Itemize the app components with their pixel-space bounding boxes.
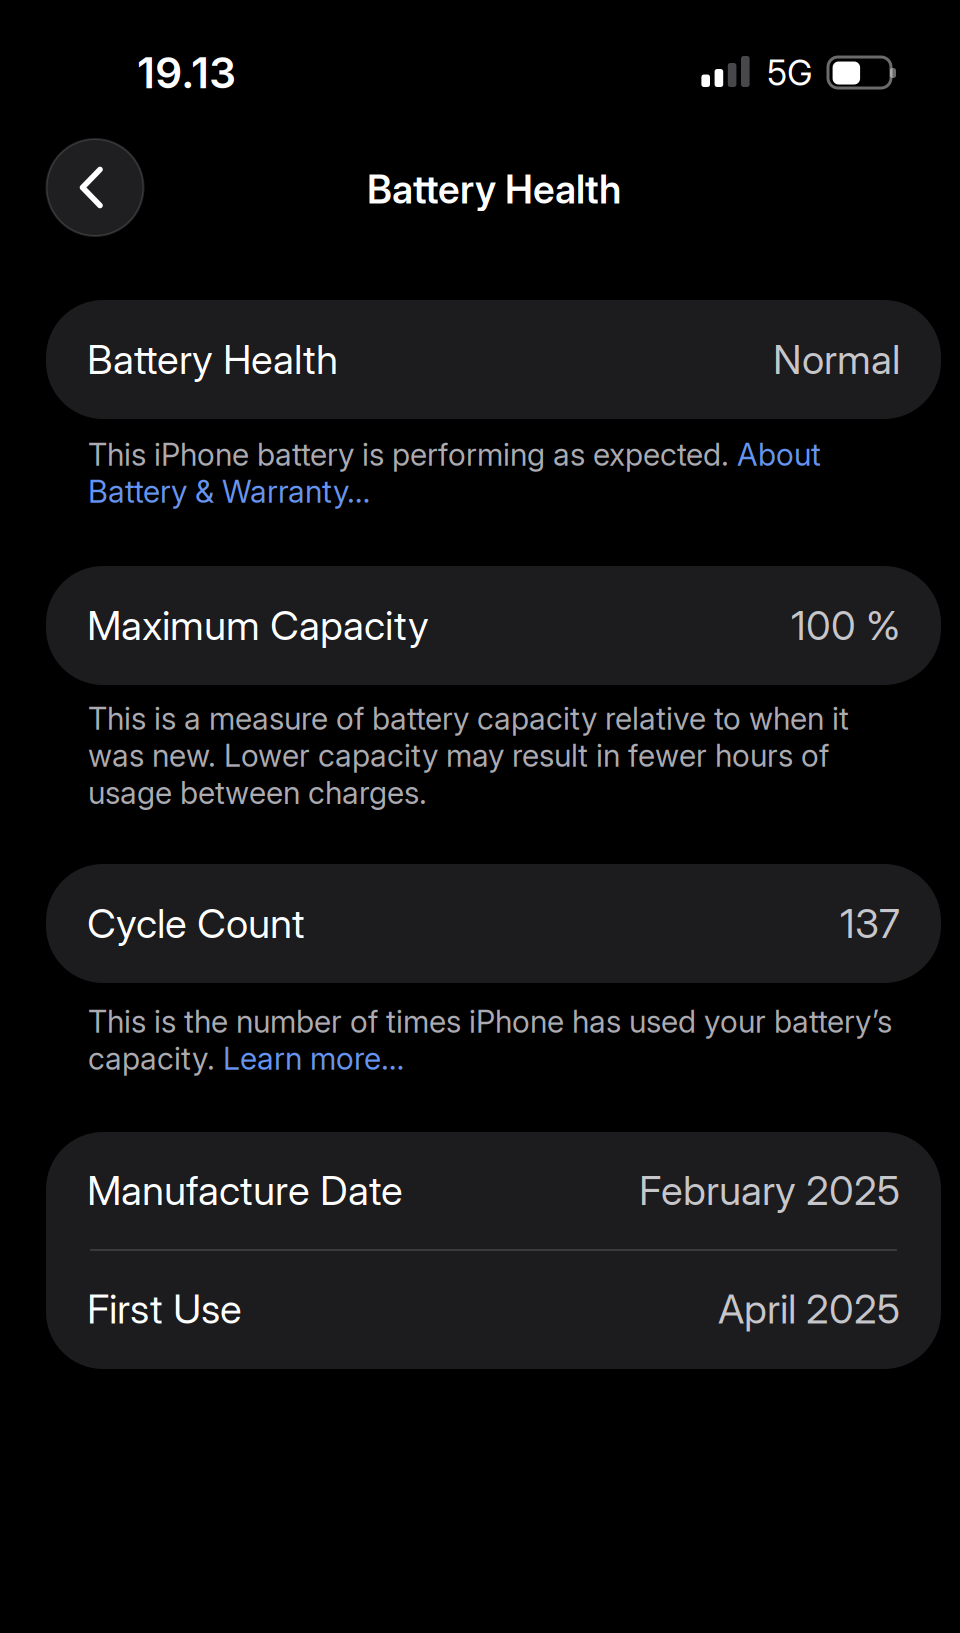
staticText: Battery Health [87,335,338,384]
staticText: This is the number of times iPhone has u… [88,1003,892,1077]
button[interactable]: First Use [46,1249,941,1369]
staticText: First Use [87,1285,242,1333]
staticText: Cycle Count [87,899,305,948]
button[interactable]: Back [46,139,143,236]
staticText: 5G [767,52,813,94]
button[interactable]: Manufacture Date [46,1132,941,1249]
staticText: Battery Health [367,166,621,213]
staticText: 137 [840,899,900,948]
button[interactable]: About Battery & Warranty [88,478,368,509]
staticText: This iPhone battery is performing as exp… [88,436,821,510]
staticText: 100 % [791,601,900,650]
button[interactable]: About Battery & Warranty [733,441,819,472]
button[interactable]: Learn more [221,1045,403,1076]
staticText: Normal [773,335,900,384]
staticText: This is a measure of battery capacity re… [88,700,849,811]
staticText: Manufacture Date [87,1166,403,1215]
staticText: April 2025 [718,1285,900,1333]
staticText: Maximum Capacity [87,601,429,650]
button[interactable]: Cycle Count [46,864,941,983]
staticText: 19.13 [137,47,236,99]
button[interactable]: Battery Health [46,300,941,419]
staticText: February 2025 [639,1166,900,1215]
button[interactable]: Maximum Capacity [46,566,941,685]
